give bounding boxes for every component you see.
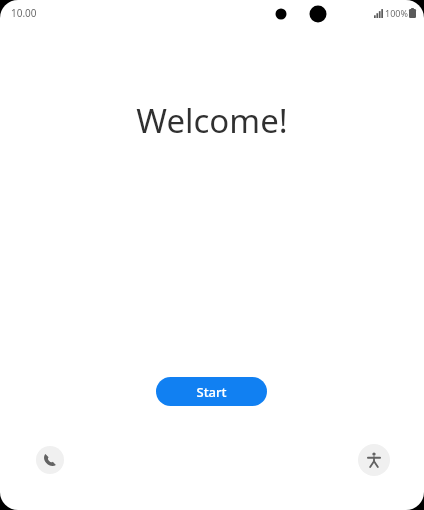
button[interactable]: Call (36, 446, 64, 474)
staticText: Start (196, 383, 227, 401)
button[interactable]: Start (156, 377, 267, 406)
staticText: 100% (385, 7, 408, 19)
button[interactable]: Accessibility (358, 444, 390, 476)
staticText: Welcome! (136, 98, 288, 143)
staticText: 10.00 (11, 6, 37, 20)
